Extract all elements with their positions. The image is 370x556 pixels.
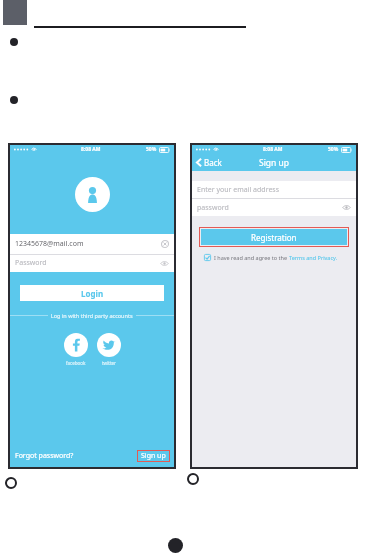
staticText: 12345678@mail.com [15, 239, 84, 249]
staticText: password [197, 203, 229, 213]
button[interactable]: Password [10, 254, 174, 272]
button[interactable]: Enter your email address [192, 181, 356, 198]
button[interactable]: facebook [64, 333, 88, 366]
button[interactable]: twitter [97, 333, 121, 366]
button[interactable]: I have read and agree to the [204, 254, 344, 261]
button[interactable]: Back [192, 157, 226, 168]
staticText: 8:08 AM [263, 146, 283, 153]
staticText: Sign up [259, 157, 290, 169]
button[interactable]: password [192, 199, 356, 216]
other: Show password [342, 203, 351, 212]
staticText: twitter [102, 360, 116, 366]
staticText: Password [15, 258, 47, 268]
staticText: Enter your email address [197, 185, 280, 195]
button[interactable]: 12345678@mail.com [10, 234, 174, 254]
staticText: 50% [146, 146, 157, 153]
staticText: Sign up [141, 451, 166, 461]
button[interactable]: Registration [201, 229, 347, 245]
staticText: 50% [328, 146, 339, 153]
other: Back [196, 158, 202, 167]
staticText: Log in with third party accounts [48, 312, 136, 319]
button[interactable]: Login [20, 285, 164, 301]
button[interactable]: Forgot password? [15, 451, 74, 461]
staticText: 8:08 AM [81, 146, 101, 153]
staticText: facebook [66, 360, 86, 366]
staticText: Login [81, 288, 104, 299]
staticText: Back [204, 157, 222, 168]
other: Show password [160, 259, 169, 268]
other: Clear text [161, 240, 169, 248]
staticText: I have read and agree to the [214, 254, 289, 261]
button[interactable]: Terms and Privacy. [289, 254, 338, 261]
button[interactable]: Sign up [137, 450, 170, 462]
staticText: Registration [251, 232, 297, 243]
